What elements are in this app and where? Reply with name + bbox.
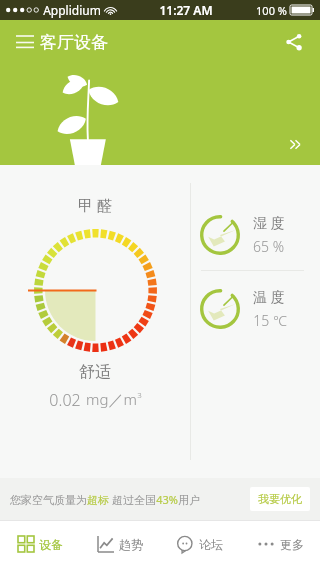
button[interactable]: 温 度 (199, 287, 320, 330)
staticText: 超过全国 (109, 492, 156, 507)
staticText: 100 % (256, 3, 287, 18)
staticText: 趋势 (119, 537, 143, 552)
staticText: 甲 醛 (78, 195, 112, 215)
staticText: mg／m (86, 389, 137, 409)
button[interactable]: 湿 度 (199, 213, 320, 256)
button[interactable]: 趋势 (80, 520, 160, 568)
staticText: 15 ℃ (253, 311, 287, 330)
staticText: 11:27 AM (159, 2, 213, 18)
button[interactable]: 论坛 (160, 520, 240, 568)
staticText: 3 (137, 389, 142, 400)
staticText: 超标 (87, 493, 109, 507)
button[interactable]: 更多 (240, 520, 320, 568)
staticText: 用户 (178, 493, 200, 507)
staticText: 您家空气质量为 (10, 493, 87, 507)
staticText: 更多 (280, 537, 304, 552)
staticText: 客厅设备 (40, 32, 108, 53)
button[interactable]: Menu (8, 25, 42, 59)
staticText: 设备 (39, 537, 63, 552)
staticText: 0.02 (49, 389, 81, 411)
button[interactable]: Share (276, 24, 312, 60)
staticText: 我要优化 (258, 492, 302, 506)
button[interactable]: 我要优化 (250, 487, 310, 511)
staticText: 43% (156, 492, 178, 507)
button[interactable]: More details (280, 129, 310, 159)
button[interactable] (34, 229, 157, 352)
staticText: 论坛 (199, 537, 223, 552)
button[interactable]: 设备 (0, 520, 80, 568)
staticText: 温 度 (253, 287, 285, 306)
staticText: 65 % (253, 237, 284, 256)
staticText: Applidium (43, 2, 101, 18)
staticText: 湿 度 (253, 213, 285, 232)
staticText: 舒适 (79, 362, 111, 382)
